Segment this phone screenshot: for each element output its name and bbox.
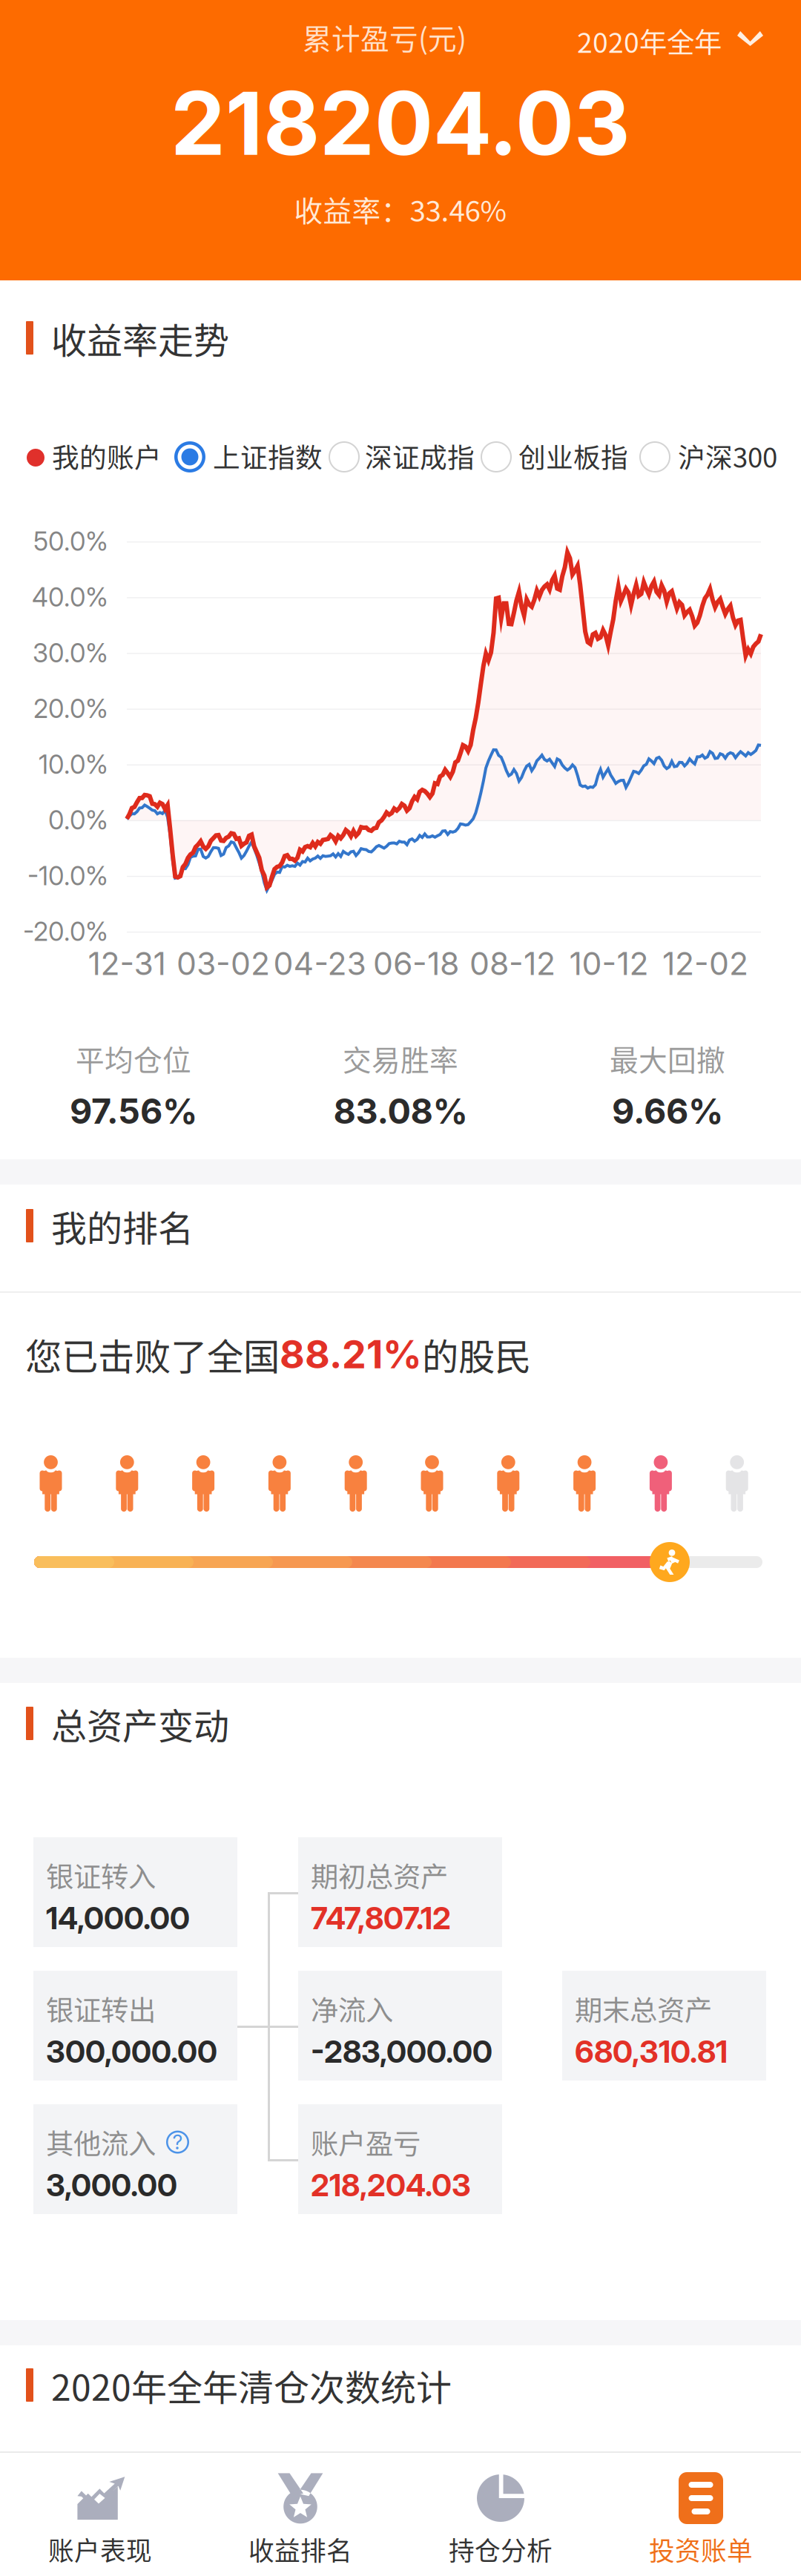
staticText: -10.0% xyxy=(27,860,108,891)
staticText: 收益率：33.46% xyxy=(294,188,507,230)
staticText: 9.66% xyxy=(612,1090,723,1132)
staticText: 深证成指 xyxy=(365,436,475,476)
staticText: 06-18 xyxy=(373,944,459,983)
staticText: 上证指数 xyxy=(213,436,323,476)
staticText: 创业板指 xyxy=(518,436,628,476)
staticText: 10-12 xyxy=(569,944,649,983)
staticText: 净流入 xyxy=(311,1989,393,2029)
button[interactable]: 我的账户 xyxy=(27,441,157,477)
staticText: 收益率走势 xyxy=(51,312,229,364)
staticText: 300,000.00 xyxy=(46,2033,217,2070)
staticText: 03-02 xyxy=(177,944,270,983)
staticText: 30.0% xyxy=(33,637,108,668)
staticText: 期初总资产 xyxy=(311,1855,448,1895)
staticText: 交易胜率 xyxy=(343,1038,458,1079)
staticText: ? xyxy=(172,2130,183,2154)
staticText: 平均仓位 xyxy=(76,1038,191,1079)
staticText: 20.0% xyxy=(33,693,108,724)
staticText: 其他流入 xyxy=(46,2122,156,2162)
staticText: 收益排名 xyxy=(248,2531,352,2568)
staticText: 97.56% xyxy=(70,1090,197,1132)
staticText: 2020年全年 xyxy=(577,21,722,61)
button[interactable]: 投资账单 xyxy=(601,2453,801,2576)
staticText: 您已击败了全国 xyxy=(25,1328,280,1381)
button[interactable]: 2020年全年 xyxy=(577,15,783,62)
staticText: 680,310.81 xyxy=(575,2033,728,2070)
staticText: 我的账户 xyxy=(52,436,162,476)
button[interactable]: 上证指数 xyxy=(174,441,318,477)
staticText: 沪深300 xyxy=(678,436,777,476)
staticText: 0.0% xyxy=(48,805,108,836)
staticText: 最大回撤 xyxy=(610,1038,725,1079)
staticText: 14,000.00 xyxy=(46,1900,190,1937)
staticText: 账户表现 xyxy=(48,2531,152,2568)
staticText: 50.0% xyxy=(33,526,108,557)
staticText: 银证转入 xyxy=(46,1855,156,1895)
staticText: 总资产变动 xyxy=(51,1698,229,1749)
staticText: -283,000.00 xyxy=(311,2033,492,2070)
staticText: 08-12 xyxy=(469,944,556,983)
staticText: 88.21% xyxy=(280,1331,422,1378)
staticText: 我的排名 xyxy=(51,1200,194,1252)
button[interactable]: 账户表现 xyxy=(0,2453,200,2576)
staticText: 10.0% xyxy=(39,749,108,780)
staticText: 的股民 xyxy=(422,1328,531,1381)
staticText: 账户盈亏 xyxy=(311,2122,421,2162)
button[interactable]: 深证成指 xyxy=(329,441,472,477)
staticText: 12-02 xyxy=(662,944,748,983)
button[interactable]: 创业板指 xyxy=(481,441,625,477)
staticText: 3,000.00 xyxy=(46,2167,177,2204)
staticText: 持仓分析 xyxy=(449,2531,553,2568)
staticText: 218,204.03 xyxy=(311,2167,471,2204)
button[interactable]: 沪深300 xyxy=(639,441,774,477)
staticText: 40.0% xyxy=(32,582,108,613)
button[interactable]: 持仓分析 xyxy=(400,2453,601,2576)
staticText: 218204.03 xyxy=(171,70,630,176)
staticText: -20.0% xyxy=(23,916,108,947)
staticText: 累计盈亏(元) xyxy=(303,16,467,58)
staticText: 投资账单 xyxy=(649,2531,753,2568)
staticText: 银证转出 xyxy=(46,1989,156,2029)
button[interactable]: 收益排名 xyxy=(200,2453,400,2576)
staticText: 2020年全年清仓次数统计 xyxy=(51,2359,452,2411)
staticText: 83.08% xyxy=(333,1090,468,1132)
staticText: 747,807.12 xyxy=(311,1900,451,1937)
staticText: 04-23 xyxy=(273,944,366,983)
staticText: 12-31 xyxy=(88,944,166,983)
staticText: 期末总资产 xyxy=(575,1989,712,2029)
